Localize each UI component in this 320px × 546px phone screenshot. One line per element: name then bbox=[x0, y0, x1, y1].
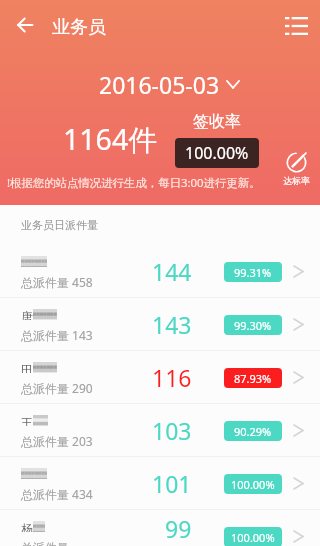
staticText: 87.93% bbox=[234, 371, 272, 386]
staticText: 103 bbox=[152, 415, 192, 446]
staticText: 总派件量 290 bbox=[21, 380, 93, 396]
button[interactable]: 2016-05-03 bbox=[93, 65, 246, 104]
button[interactable]: 杨 bbox=[0, 510, 320, 546]
staticText: 99 bbox=[165, 513, 192, 544]
button[interactable]: 总派件量 434 bbox=[0, 457, 320, 510]
staticText: 唐 bbox=[21, 309, 33, 320]
staticText: 116 bbox=[152, 362, 192, 393]
staticText: 100.00% bbox=[231, 477, 275, 492]
staticText: 总派件量 434 bbox=[21, 486, 93, 502]
button[interactable]: 总派件量 458 bbox=[0, 245, 320, 298]
button[interactable]: Back bbox=[3, 3, 47, 47]
staticText: 总派件量 203 bbox=[21, 433, 93, 449]
staticText: 业务员日派件量 bbox=[21, 218, 98, 232]
staticText: 杨 bbox=[21, 521, 33, 532]
button[interactable]: Menu bbox=[273, 2, 320, 49]
button[interactable]: 田 bbox=[0, 351, 320, 404]
staticText: 99.31% bbox=[234, 265, 272, 280]
staticText: 田 bbox=[21, 362, 33, 373]
staticText: 90.29% bbox=[234, 424, 272, 439]
staticText: 签收率 bbox=[193, 112, 241, 132]
staticText: 144 bbox=[152, 256, 192, 287]
staticText: 达标率 bbox=[283, 175, 310, 186]
staticText: 99.30% bbox=[234, 318, 272, 333]
staticText: 王 bbox=[21, 415, 33, 426]
staticText: 143 bbox=[152, 309, 192, 340]
button[interactable]: 王 bbox=[0, 404, 320, 457]
staticText: 100.00% bbox=[231, 530, 275, 545]
button[interactable]: 唐 bbox=[0, 298, 320, 351]
staticText: 总派件量 bbox=[21, 539, 73, 546]
staticText: 101 bbox=[152, 468, 192, 499]
staticText: 总派件量 458 bbox=[21, 274, 93, 290]
staticText: !根据您的站点情况进行生成，每日3:00进行更新。 bbox=[7, 175, 261, 191]
staticText: 业务员 bbox=[52, 16, 106, 39]
staticText: 100.00% bbox=[185, 142, 249, 164]
staticText: 1164件 bbox=[63, 120, 157, 159]
button[interactable]: 达标率 bbox=[283, 152, 310, 186]
staticText: 总派件量 143 bbox=[21, 327, 93, 343]
staticText: 2016-05-03 bbox=[99, 69, 220, 100]
